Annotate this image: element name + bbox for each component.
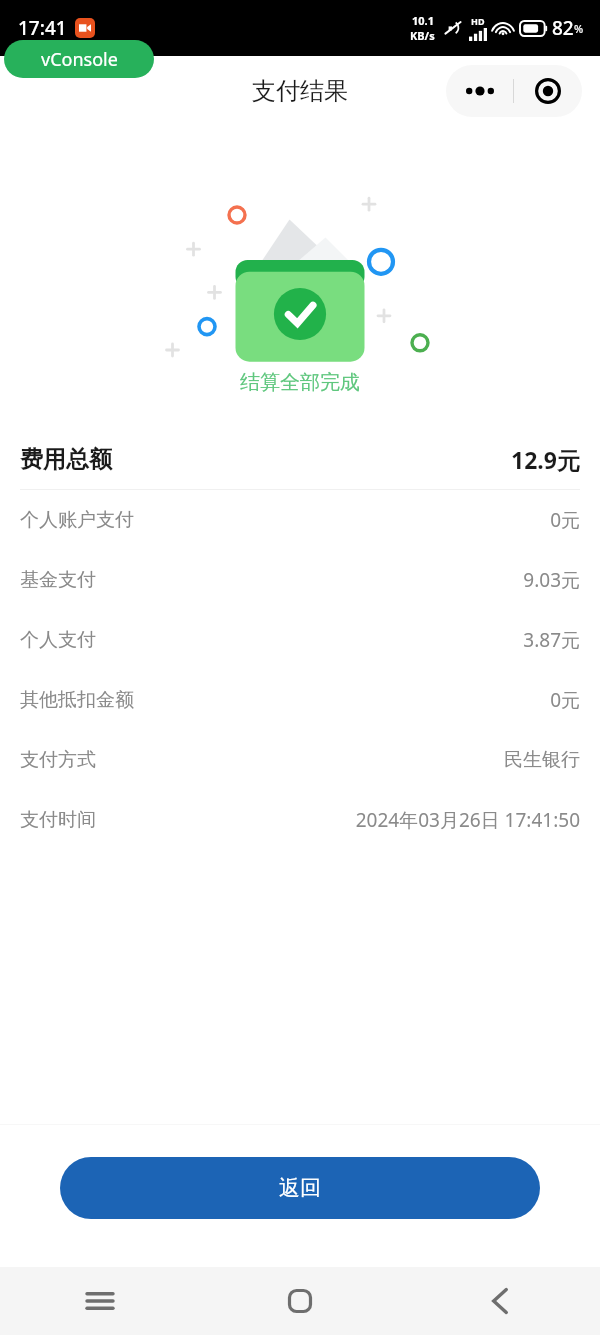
staticText: 3.87元 [523,627,580,653]
button[interactable]: 费用总额 [0,429,600,489]
staticText: 个人支付 [20,628,96,652]
staticText: 12.9元 [511,444,580,475]
staticText: KB/s [410,28,435,43]
staticText: vConsole [41,47,118,72]
button[interactable]: 支付时间 [0,790,600,850]
staticText: 返回 [279,1175,321,1201]
staticText: 0元 [550,687,580,713]
staticText: 支付方式 [20,748,96,772]
button[interactable]: 关闭 [514,65,582,117]
button[interactable]: 更多 [446,65,513,117]
staticText: 支付时间 [20,808,96,832]
staticText: % [574,21,584,36]
staticText: 9.03元 [523,567,580,593]
staticText: 17:41 [18,15,67,41]
staticText: 结算全部完成 [240,370,360,395]
button[interactable]: 其他抵扣金额 [0,670,600,730]
staticText: 0元 [550,507,580,533]
button[interactable]: 个人支付 [0,610,600,670]
button[interactable]: 返回 [60,1157,540,1219]
staticText: 个人账户支付 [20,508,134,532]
staticText: 其他抵扣金额 [20,688,134,712]
staticText: 民生银行 [504,748,580,772]
staticText: 支付结果 [252,76,348,106]
button[interactable]: 最近任务 [0,1267,200,1335]
button[interactable]: 个人账户支付 [0,490,600,550]
staticText: 10.1 [412,13,434,28]
button[interactable]: 基金支付 [0,550,600,610]
button[interactable]: 主屏幕 [200,1267,400,1335]
button[interactable]: 返回 [400,1267,600,1335]
button[interactable]: vConsole [4,40,154,78]
staticText: 2024年03月26日 17:41:50 [355,807,580,833]
staticText: 82 [552,15,574,41]
staticText: HD [471,15,485,27]
staticText: 费用总额 [20,445,112,474]
button[interactable]: 支付方式 [0,730,600,790]
staticText: 基金支付 [20,568,96,592]
